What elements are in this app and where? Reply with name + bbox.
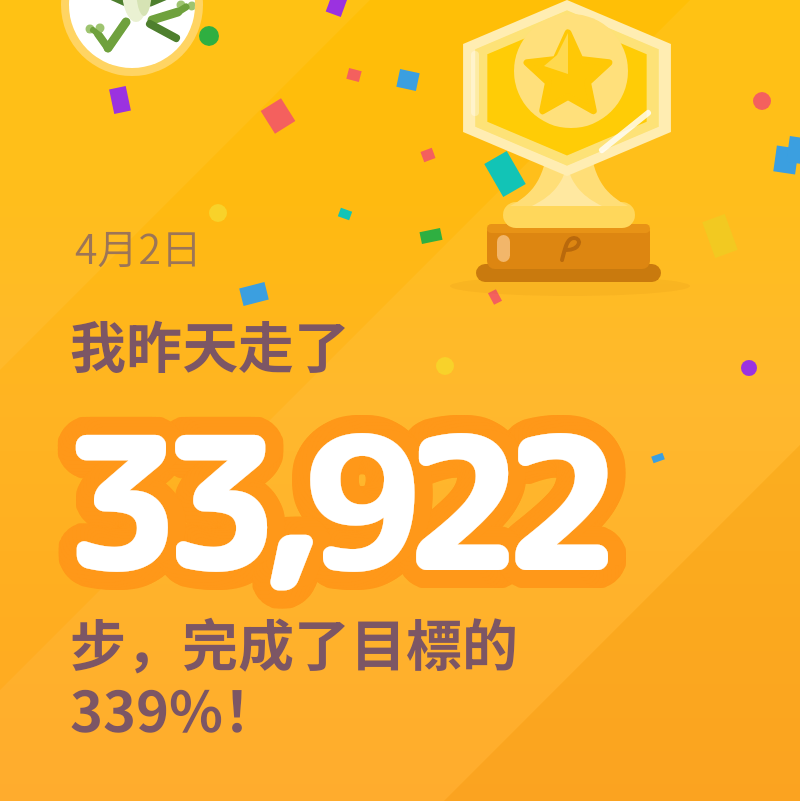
staticText: 33,922 <box>80 375 619 633</box>
staticText: 33,922 <box>54 368 593 626</box>
staticText: 33,922 <box>80 371 619 629</box>
staticText: 33,922 <box>54 355 593 613</box>
staticText: 33,922 <box>80 367 619 625</box>
staticText: 33,922 <box>46 379 585 637</box>
staticText: 33,922 <box>53 371 592 629</box>
staticText: 33,922 <box>66 389 605 647</box>
staticText: 33,922 <box>59 363 598 621</box>
staticText: 33,922 <box>76 382 615 640</box>
staticText: 33,922 <box>68 377 607 635</box>
staticText: 33,922 <box>73 357 612 615</box>
staticText: 33,922 <box>70 368 609 626</box>
staticText: 33,922 <box>48 360 587 618</box>
staticText: 33,922 <box>44 371 583 629</box>
staticText: 33,922 <box>58 353 597 611</box>
staticText: 33,922 <box>51 357 590 615</box>
staticText: 33,922 <box>65 379 604 637</box>
staticText: 33,922 <box>62 353 601 611</box>
staticText: 33,922 <box>44 375 583 633</box>
staticText: 33,922 <box>56 377 595 635</box>
staticText: 33,922 <box>70 374 609 632</box>
staticText: 33,922 <box>56 365 595 623</box>
staticText: 33,922 <box>66 353 605 611</box>
staticText: 4月2日 <box>75 216 203 275</box>
staticText: 33,922 <box>48 382 587 640</box>
staticText: 33,922 <box>62 380 601 638</box>
staticText: 33,922 <box>46 363 585 621</box>
staticText: 步，完成了目標的 339%！ <box>70 601 518 748</box>
staticText: 33,922 <box>62 362 601 620</box>
staticText: 33,922 <box>44 367 583 625</box>
staticText: 33,922 <box>70 387 609 645</box>
staticText: 33,922 <box>54 387 593 645</box>
staticText: 33,922 <box>62 389 601 647</box>
staticText: 33,922 <box>73 385 612 643</box>
staticText: 33,922 <box>78 379 617 637</box>
staticText: 33,922 <box>78 363 617 621</box>
staticText: 33,922 <box>65 363 604 621</box>
staticText: 33,922 <box>51 385 590 643</box>
staticText: 我昨天走了 <box>70 303 350 384</box>
staticText: 33,922 <box>59 379 598 637</box>
staticText: 33,922 <box>76 360 615 618</box>
staticText: 33,922 <box>70 355 609 613</box>
staticText: 33,922 <box>58 389 597 647</box>
staticText: 33,922 <box>62 371 601 629</box>
staticText: 33,922 <box>54 374 593 632</box>
staticText: 33,922 <box>68 365 607 623</box>
staticText: 33,922 <box>71 371 610 629</box>
